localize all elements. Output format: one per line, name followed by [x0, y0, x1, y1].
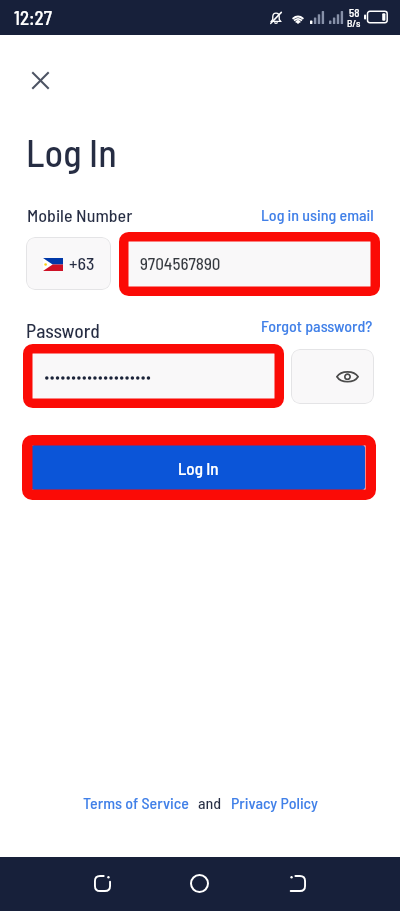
button[interactable]: Country code +63: [26, 237, 111, 290]
button[interactable]: [26, 349, 282, 404]
staticText: +63: [69, 252, 95, 274]
staticText: Privacy Policy: [231, 793, 318, 812]
button[interactable]: Forgot password?: [261, 316, 373, 335]
staticText: 58: [349, 6, 360, 19]
button[interactable]: Recent apps: [79, 860, 126, 907]
button[interactable]: Close: [18, 58, 62, 102]
staticText: B/s: [347, 17, 361, 29]
staticText: Terms of Service: [83, 793, 189, 812]
staticText: 12:27: [14, 6, 52, 29]
staticText: Log In: [26, 129, 117, 175]
button[interactable]: Log in using email: [261, 205, 374, 224]
staticText: Forgot password?: [261, 316, 373, 335]
button[interactable]: Back: [274, 860, 321, 907]
staticText: Log in using email: [261, 205, 374, 224]
button[interactable]: Home: [176, 860, 223, 907]
staticText: and: [198, 793, 222, 812]
staticText: Log In: [178, 458, 219, 478]
staticText: Password: [26, 318, 100, 341]
button[interactable]: Terms of Service: [83, 793, 189, 812]
staticText: 9704567890: [140, 253, 221, 273]
button[interactable]: Log In: [31, 445, 365, 490]
button[interactable]: Show password: [291, 349, 374, 404]
button[interactable]: Privacy Policy: [231, 793, 318, 812]
staticText: Mobile Number: [27, 204, 133, 226]
button[interactable]: 9704567890: [121, 237, 374, 290]
